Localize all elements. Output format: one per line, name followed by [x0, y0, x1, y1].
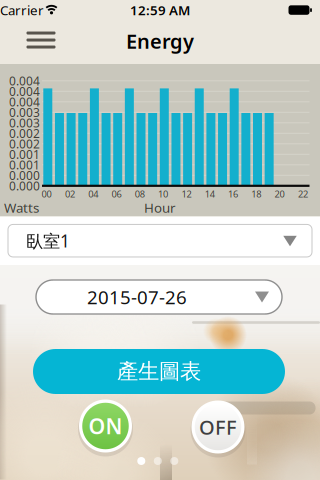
staticText: 16: [228, 188, 238, 200]
staticText: Carrier: [0, 1, 44, 19]
staticText: 0.000: [9, 178, 40, 194]
staticText: 0.004: [9, 73, 40, 89]
staticText: 臥室1: [26, 229, 70, 252]
staticText: 0.001: [9, 157, 40, 173]
button[interactable]: OFF: [189, 398, 246, 455]
button[interactable]: 2015-07-26: [36, 280, 282, 314]
staticText: 0.003: [9, 115, 40, 131]
staticText: OFF: [199, 414, 237, 440]
staticText: 06: [111, 188, 121, 200]
button[interactable]: [20, 25, 62, 55]
staticText: 產生圖表: [117, 358, 201, 385]
staticText: Hour: [144, 199, 176, 216]
staticText: 0.003: [9, 104, 40, 120]
staticText: 0.002: [9, 125, 40, 141]
staticText: Watts: [4, 199, 39, 216]
staticText: Energy: [126, 28, 194, 54]
staticText: 0.002: [9, 136, 40, 152]
staticText: 12:59 AM: [130, 1, 190, 19]
staticText: 22: [298, 188, 308, 200]
staticText: 0.000: [9, 167, 40, 183]
button[interactable]: 產生圖表: [33, 349, 285, 394]
staticText: 00: [42, 188, 52, 200]
staticText: 0.001: [9, 146, 40, 162]
staticText: ON: [88, 412, 122, 440]
staticText: 08: [135, 188, 145, 200]
staticText: 04: [88, 188, 98, 200]
staticText: 10: [158, 188, 168, 200]
button[interactable]: ON: [77, 397, 134, 454]
staticText: 18: [251, 188, 261, 200]
staticText: 0.004: [9, 83, 40, 99]
staticText: 12: [181, 188, 191, 200]
staticText: 2015-07-26: [87, 285, 187, 309]
staticText: 0.004: [9, 94, 40, 110]
staticText: 20: [275, 188, 285, 200]
staticText: 02: [65, 188, 75, 200]
staticText: 14: [205, 188, 215, 200]
button[interactable]: 臥室1: [8, 224, 312, 257]
